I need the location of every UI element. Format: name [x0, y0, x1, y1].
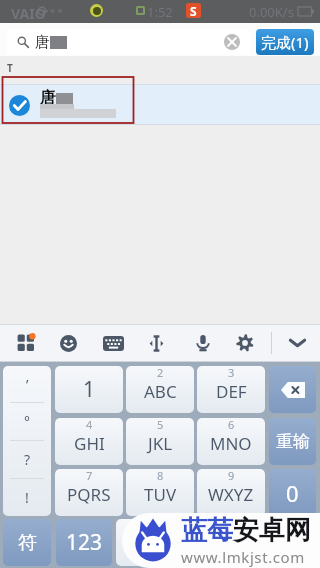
staticText: T — [7, 61, 13, 75]
button[interactable]: Apps — [4, 324, 47, 362]
button[interactable]: Emoji — [47, 324, 90, 362]
button[interactable]: Symbols — [3, 519, 51, 566]
button[interactable]: ! — [3, 479, 51, 516]
button[interactable]: 4 — [55, 418, 123, 465]
button[interactable]: 9 — [197, 469, 265, 516]
staticText: ? — [24, 450, 31, 469]
button[interactable]: ? — [3, 441, 51, 478]
staticText: PQRS — [67, 483, 111, 506]
staticText: 1:52 — [147, 3, 173, 21]
button[interactable]: 8 — [126, 469, 194, 516]
staticText: 4 — [86, 418, 93, 432]
staticText: 8 — [157, 469, 164, 483]
staticText: VAIO — [11, 4, 46, 23]
staticText: 1 — [83, 375, 96, 404]
staticText: 蓝莓 — [181, 514, 233, 547]
button[interactable]: Zero — [269, 469, 316, 516]
button[interactable]: 3 — [197, 366, 265, 413]
staticText: www.lmkjst.com — [181, 547, 305, 567]
button[interactable]: 唐 — [0, 84, 320, 125]
button[interactable]: 唐 — [7, 29, 250, 55]
staticText: 9 — [228, 469, 235, 483]
staticText: 0 — [286, 478, 299, 508]
staticText: ! — [25, 488, 29, 507]
button[interactable]: Keyboard layout — [92, 324, 135, 362]
button[interactable]: Move cursor — [135, 324, 178, 362]
staticText: 7 — [86, 469, 93, 483]
staticText: ABC — [144, 380, 177, 403]
button[interactable]: 完成(1) — [256, 29, 314, 55]
staticText: 3 — [228, 366, 235, 380]
staticText: 符 — [18, 531, 37, 555]
button[interactable]: Settings — [223, 324, 266, 362]
staticText: 5 — [157, 418, 164, 432]
staticText: GHI — [74, 432, 105, 455]
staticText: 123 — [66, 528, 103, 557]
staticText: TUV — [144, 483, 177, 506]
staticText: JKL — [148, 432, 173, 455]
button[interactable]: Numbers — [56, 519, 112, 566]
staticText: 0.00K/s — [249, 3, 294, 21]
button[interactable]: ° — [3, 403, 51, 440]
button[interactable]: ’ — [3, 366, 51, 402]
staticText: ’ — [26, 375, 29, 394]
staticText: 唐 — [40, 88, 56, 108]
staticText: 2 — [157, 366, 164, 380]
staticText: ° — [24, 412, 30, 431]
staticText: DEF — [216, 380, 247, 403]
button[interactable]: Space — [116, 519, 316, 566]
button[interactable]: Voice input — [181, 324, 224, 362]
staticText: 6 — [228, 418, 235, 432]
button[interactable]: Re-enter — [269, 418, 316, 465]
staticText: 完成(1) — [261, 32, 309, 52]
button[interactable]: Clear text — [224, 34, 240, 50]
button[interactable]: 1 — [55, 366, 123, 413]
button[interactable]: Backspace — [269, 366, 316, 413]
button[interactable]: 2 — [126, 366, 194, 413]
staticText: 重输 — [276, 431, 310, 452]
button[interactable]: 5 — [126, 418, 194, 465]
staticText: 唐 — [35, 33, 50, 52]
button[interactable]: 6 — [197, 418, 265, 465]
staticText: 安卓网 — [233, 514, 311, 547]
staticText: S — [190, 3, 197, 18]
staticText: MNO — [210, 432, 252, 455]
button[interactable]: Hide keyboard — [275, 324, 320, 362]
staticText: WXYZ — [208, 483, 254, 506]
button[interactable]: 7 — [55, 469, 123, 516]
